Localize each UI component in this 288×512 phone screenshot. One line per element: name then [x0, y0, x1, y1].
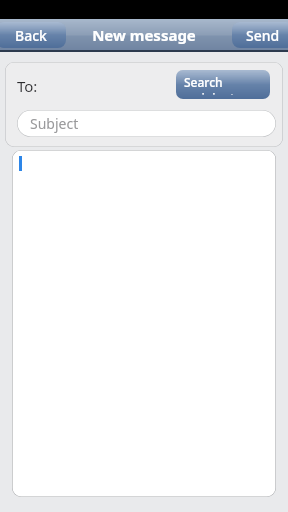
button[interactable]: Back [0, 22, 66, 48]
button[interactable]: Subject [17, 110, 276, 137]
staticText: Subject [30, 114, 79, 133]
staticText: To: [17, 76, 38, 96]
staticText: New message [92, 25, 196, 45]
staticText: Send [246, 26, 280, 44]
staticText: Back [15, 26, 47, 44]
button[interactable]: Send [232, 22, 288, 48]
staticText: Search recipient [184, 74, 262, 95]
button[interactable]: Search recipient [176, 70, 270, 99]
button[interactable]: Text cursor [12, 150, 276, 497]
